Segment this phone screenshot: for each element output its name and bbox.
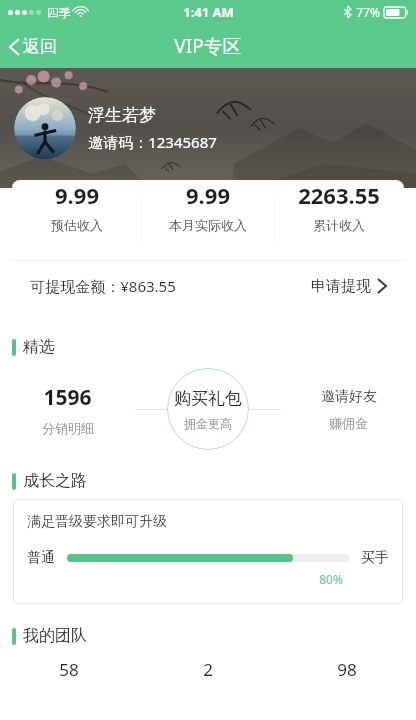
staticText: 买手 [361, 549, 389, 567]
staticText: 80% [319, 571, 343, 587]
staticText: 2 [203, 658, 213, 681]
button[interactable]: 返回 [0, 30, 71, 63]
staticText: 邀请码：12345687 [88, 132, 217, 152]
button[interactable]: 购买礼包 [167, 368, 249, 450]
button[interactable]: 邀请好友 [281, 388, 416, 431]
staticText: 1:41 AM [183, 3, 234, 21]
staticText: 本月实际收入 [169, 217, 247, 233]
staticText: 精选 [23, 337, 55, 357]
staticText: 我的团队 [23, 626, 87, 646]
staticText: 1596 [43, 383, 92, 412]
staticText: 购买礼包 [174, 388, 242, 409]
staticText: 9.99 [55, 180, 99, 210]
staticText: 预估收入 [51, 217, 103, 233]
button[interactable]: 9.99 [12, 180, 142, 233]
staticText: VIP专区 [174, 33, 242, 59]
staticText: 浮生若梦 [88, 105, 156, 126]
button[interactable]: 可提现金额：¥863.55 [12, 261, 404, 311]
staticText: 申请提现 [311, 277, 371, 296]
staticText: 成长之路 [23, 471, 87, 491]
staticText: 满足晋级要求即可升级 [27, 513, 167, 531]
staticText: 可提现金额：¥863.55 [30, 276, 176, 296]
button[interactable]: 9.99 [143, 180, 273, 233]
button[interactable]: 1596 [0, 383, 135, 436]
button[interactable]: 2263.55 [274, 180, 404, 233]
staticText: 返回 [23, 36, 57, 57]
staticText: 四季 [47, 5, 71, 20]
button[interactable]: 58 [0, 658, 138, 681]
staticText: 分销明细 [42, 420, 94, 436]
staticText: 赚佣金 [329, 415, 368, 431]
staticText: 邀请好友 [321, 388, 377, 406]
button[interactable]: 满足晋级要求即可升级 [13, 499, 403, 604]
staticText: 58 [59, 658, 79, 681]
button[interactable]: 98 [277, 658, 416, 681]
staticText: 拥金更高 [184, 416, 232, 431]
staticText: 98 [337, 658, 357, 681]
staticText: 普通 [27, 549, 55, 567]
staticText: 9.99 [186, 180, 230, 210]
button[interactable]: 2 [138, 658, 277, 681]
staticText: 77% [356, 4, 380, 20]
staticText: 累计收入 [313, 217, 365, 233]
staticText: 2263.55 [298, 180, 380, 210]
